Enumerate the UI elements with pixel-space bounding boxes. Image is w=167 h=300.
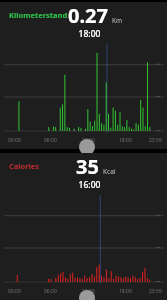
staticText: 0.27 <box>68 2 108 28</box>
staticText: 18:00 <box>119 137 132 144</box>
staticText: 16:00 <box>6 179 167 191</box>
staticText: 35 <box>76 153 99 179</box>
staticText: 06:00 <box>44 137 57 144</box>
staticText: 18:00 <box>119 288 132 295</box>
button[interactable]: Scrub handle <box>79 290 95 300</box>
staticText: 00:00 <box>8 288 21 295</box>
staticText: Calories <box>9 161 40 171</box>
staticText: 23:59 <box>149 288 162 295</box>
staticText: 23:59 <box>149 137 162 144</box>
staticText: Km <box>112 16 123 25</box>
staticText: 06:00 <box>44 288 57 295</box>
button[interactable]: Kilometerstand <box>0 2 167 149</box>
button[interactable]: Scrub handle <box>79 139 95 155</box>
staticText: Kcal <box>103 167 116 176</box>
staticText: Kilometerstand <box>9 10 68 20</box>
staticText: 12:00 <box>82 288 95 295</box>
staticText: 00:00 <box>8 137 21 144</box>
staticText: 12:00 <box>82 137 95 144</box>
staticText: 18:00 <box>6 28 167 40</box>
button[interactable]: Calories <box>0 153 167 300</box>
